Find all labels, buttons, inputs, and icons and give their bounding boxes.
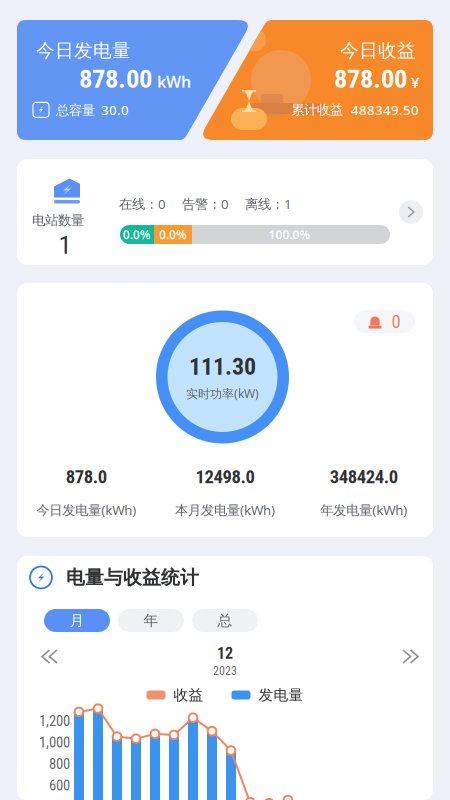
button[interactable]: 今日发电量 [17,20,253,140]
staticText: 1,200 [39,712,70,730]
staticText: 累计收益 [291,102,343,118]
staticText: 800 [49,755,70,773]
staticText: 年发电量(kWh) [320,501,407,519]
staticText: 年 [143,611,158,629]
staticText: 12498.0 [195,466,254,488]
staticText: 发电量 [258,686,303,704]
staticText: 0.0% [123,226,151,242]
staticText: 488349.50 [351,101,419,119]
staticText: 总容量 30.0 [56,101,129,119]
button[interactable]: Next month [393,640,428,673]
staticText: 878.0 [66,466,107,488]
button[interactable]: 月 [44,609,110,632]
staticText: 实时功率(kW) [186,386,259,401]
staticText: ¥ [411,72,419,92]
button[interactable]: Previous month [32,640,67,673]
staticText: kWh [157,71,191,92]
button[interactable]: 0 [354,310,415,333]
staticText: 111.30 [189,352,256,381]
staticText: 今日收益 [340,39,416,62]
staticText: 总 [217,611,232,629]
staticText: 收益 [173,686,203,704]
staticText: 离线：1 [245,195,292,213]
staticText: 今日发电量(kWh) [36,501,136,519]
staticText: 电站数量 [32,212,84,228]
staticText: 348424.0 [330,466,398,488]
staticText: 2023 [213,664,237,678]
staticText: 告警：0 [182,195,229,213]
staticText: 878.00 [79,63,152,94]
staticText: 0 [391,311,400,332]
staticText: 1,000 [39,734,70,751]
staticText: 12 [217,644,233,663]
staticText: 今日发电量 [36,39,131,62]
staticText: 在线：0 [119,195,166,213]
staticText: 600 [49,777,70,794]
button[interactable]: 年 [118,609,184,632]
button[interactable]: 总 [192,609,258,632]
staticText: 电量与收益统计 [66,566,199,589]
staticText: 878.00 [334,63,407,94]
staticText: 100.0% [268,226,310,242]
button[interactable]: 电站数量 [17,159,433,265]
button[interactable]: 今日收益 [198,20,433,140]
staticText: 本月发电量(kWh) [175,501,275,519]
staticText: 1 [58,229,71,260]
staticText: 月 [69,611,84,629]
staticText: 0.0% [159,226,187,242]
